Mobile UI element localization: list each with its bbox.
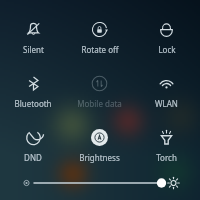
button[interactable]: DND xyxy=(0,129,66,163)
button[interactable] xyxy=(0,175,200,191)
staticText: Bluetooth xyxy=(14,98,52,109)
button[interactable]: Lock xyxy=(133,21,200,55)
button[interactable]: Bluetooth xyxy=(0,75,66,109)
button[interactable]: Rotate off xyxy=(66,21,133,55)
button[interactable]: Torch xyxy=(133,129,200,163)
staticText: Brightness xyxy=(79,152,120,163)
button[interactable]: WLAN xyxy=(133,75,200,109)
staticText: Rotate off xyxy=(81,44,119,55)
staticText: Torch xyxy=(156,152,177,163)
staticText: WLAN xyxy=(155,98,178,109)
staticText: Mobile data xyxy=(77,98,122,109)
staticText: Silent xyxy=(23,44,44,55)
staticText: Lock xyxy=(158,44,176,55)
button[interactable]: Silent xyxy=(0,21,66,55)
staticText: DND xyxy=(24,152,42,163)
button[interactable]: Mobile data xyxy=(66,75,133,109)
button[interactable]: Brightness xyxy=(66,129,133,163)
